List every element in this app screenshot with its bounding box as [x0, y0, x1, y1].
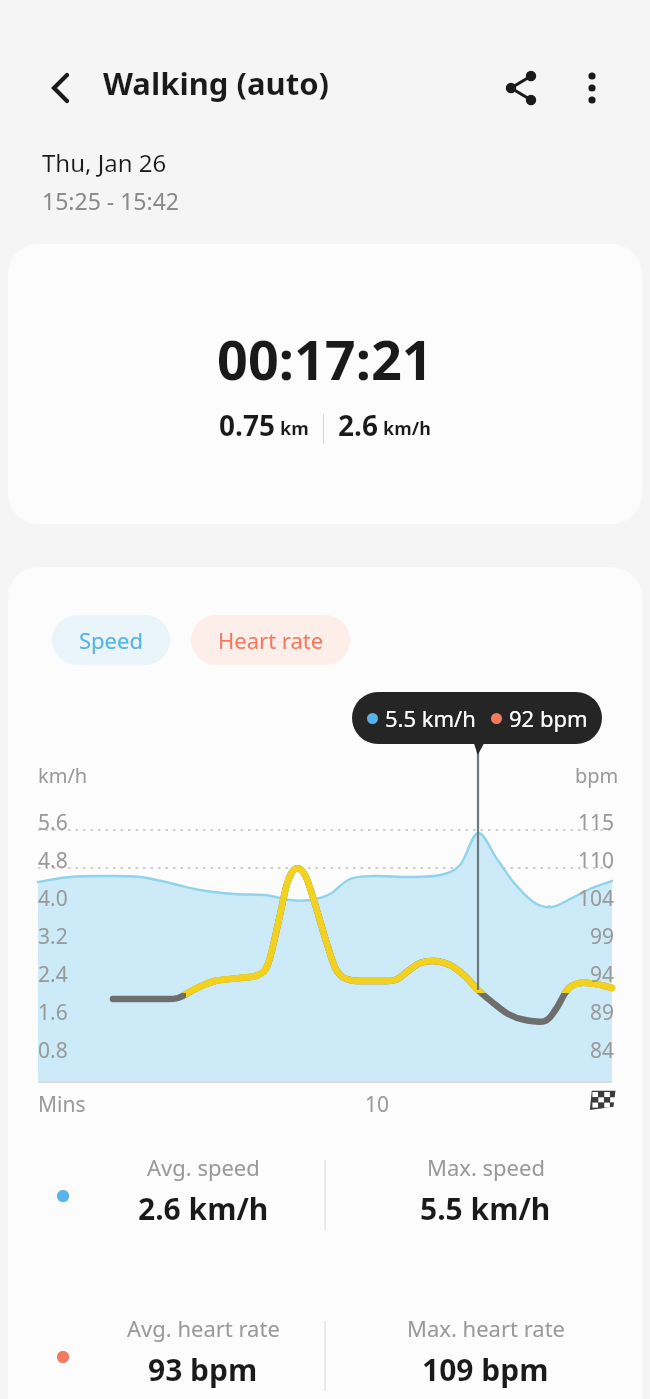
staticText: Speed: [79, 625, 143, 655]
staticText: 5.5 km/h: [385, 703, 476, 733]
staticText: 10: [365, 1090, 390, 1119]
staticText: 4.8: [38, 846, 68, 875]
staticText: 115: [564, 808, 614, 837]
staticText: Max. speed: [427, 1152, 545, 1182]
staticText: km: [280, 416, 309, 441]
staticText: Heart rate: [218, 625, 324, 655]
staticText: Max. heart rate: [407, 1313, 565, 1343]
staticText: 99: [564, 922, 614, 951]
staticText: bpm: [575, 762, 619, 789]
staticText: 0.75: [219, 406, 275, 444]
staticText: 92 bpm: [509, 703, 588, 733]
staticText: Walking (auto): [103, 62, 330, 104]
staticText: km/h: [38, 762, 88, 789]
staticText: Avg. speed: [147, 1152, 260, 1182]
staticText: 15:25 - 15:42: [42, 185, 179, 216]
staticText: 2.4: [38, 960, 68, 989]
staticText: 3.2: [38, 922, 68, 951]
staticText: 5.6: [38, 808, 68, 837]
staticText: 5.5 km/h: [420, 1188, 551, 1229]
staticText: 94: [564, 960, 614, 989]
staticText: 84: [564, 1036, 614, 1065]
staticText: 109 bpm: [422, 1349, 549, 1390]
staticText: 1.6: [38, 998, 68, 1027]
staticText: 2.6: [338, 406, 378, 444]
staticText: 110: [564, 846, 614, 875]
staticText: 0.8: [38, 1036, 68, 1065]
button[interactable]: Heart rate: [191, 615, 350, 665]
button[interactable]: Speed: [52, 615, 170, 665]
staticText: 89: [564, 998, 614, 1027]
staticText: 104: [564, 884, 614, 913]
staticText: Thu, Jan 26: [42, 146, 167, 179]
staticText: 4.0: [38, 884, 68, 913]
button[interactable]: Back: [34, 62, 86, 114]
staticText: 2.6 km/h: [138, 1188, 269, 1229]
staticText: Mins: [38, 1090, 86, 1119]
button[interactable]: More options: [566, 62, 618, 114]
staticText: 93 bpm: [148, 1349, 258, 1390]
button[interactable]: 00:17:21: [8, 244, 642, 524]
staticText: km/h: [383, 416, 431, 441]
staticText: 00:17:21: [217, 322, 433, 396]
staticText: Avg. heart rate: [127, 1313, 280, 1343]
button[interactable]: Share: [496, 62, 548, 114]
